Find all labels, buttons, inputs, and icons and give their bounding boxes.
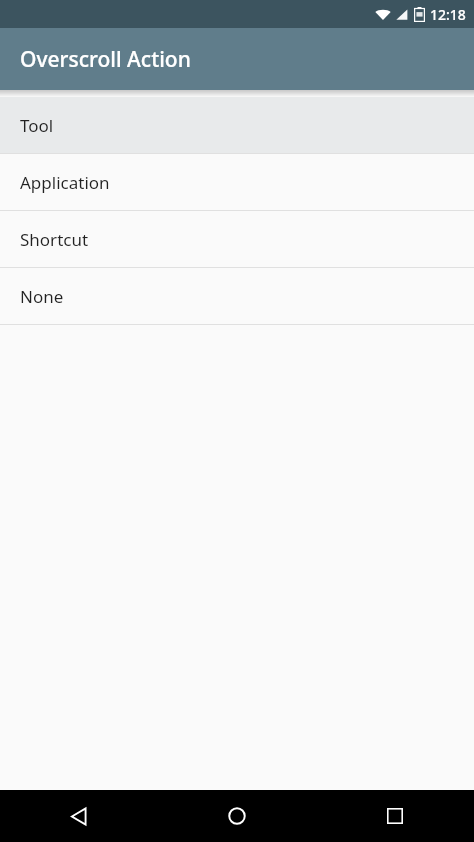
staticText: 12:18	[430, 5, 466, 24]
staticText: Tool	[20, 114, 54, 137]
staticText: Shortcut	[20, 228, 89, 251]
staticText: None	[20, 285, 64, 308]
button[interactable]: Shortcut	[0, 211, 474, 267]
button[interactable]: None	[0, 268, 474, 324]
button[interactable]: Application	[0, 154, 474, 210]
button[interactable]: Home	[158, 790, 316, 842]
button[interactable]: Recent apps	[316, 790, 474, 842]
staticText: Application	[20, 171, 110, 194]
staticText: Overscroll Action	[20, 45, 191, 74]
button[interactable]: Back	[0, 790, 158, 842]
button[interactable]: Tool	[0, 97, 474, 153]
